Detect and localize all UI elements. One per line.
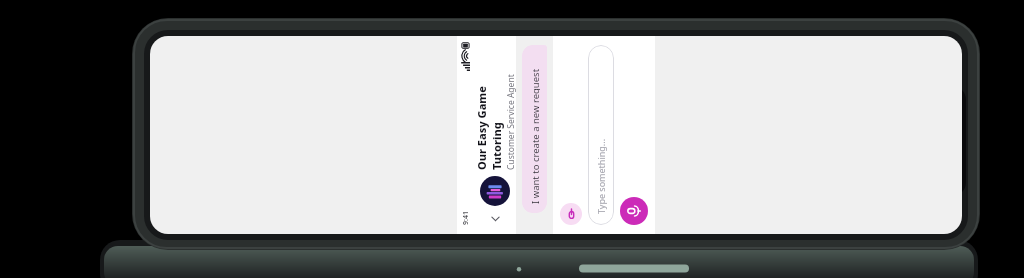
- staticText: Customer Service Agent: [505, 74, 516, 170]
- button[interactable]: Back: [485, 209, 505, 229]
- staticText: Our Easy Game Tutoring: [474, 46, 504, 170]
- staticText: Type something...: [595, 138, 607, 214]
- button[interactable]: I want to create a new request please: [522, 45, 547, 213]
- button[interactable]: Record voice message: [620, 197, 648, 225]
- button[interactable]: Attach file: [560, 203, 582, 225]
- staticText: I want to create a new request please: [529, 54, 540, 204]
- button[interactable]: Type something...: [588, 45, 614, 225]
- staticText: 9:41: [461, 211, 471, 225]
- button[interactable]: [480, 176, 510, 206]
